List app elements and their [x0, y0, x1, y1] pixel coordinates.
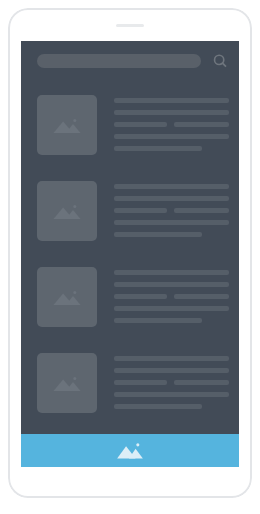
button[interactable] [21, 95, 239, 155]
button[interactable] [21, 181, 239, 241]
button[interactable] [21, 267, 239, 327]
button[interactable]: Search [210, 51, 230, 71]
button[interactable]: Photos [21, 434, 239, 467]
button[interactable] [21, 353, 239, 413]
